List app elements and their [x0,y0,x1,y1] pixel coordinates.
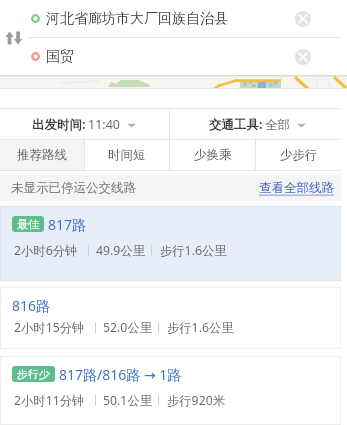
staticText: 少步行 [280,147,318,163]
staticText: 国贸 [46,48,295,66]
staticText: 最佳 [17,217,39,231]
button[interactable]: 步行少 [0,356,341,425]
staticText: 推荐路线 [17,147,67,163]
staticText: 未显示已停运公交线路 [11,180,136,196]
staticText: 2小时15分钟 [14,319,85,336]
button[interactable]: 推荐路线 [0,140,84,170]
staticText: 步行920米 [167,392,225,409]
staticText: 少换乘 [194,147,232,163]
staticText: 时间短 [108,147,146,163]
staticText: 步行1.6公里 [160,242,227,259]
button[interactable]: 最佳 [0,206,341,281]
staticText: 出发时间: [32,116,86,133]
staticText: 52.0公里 [103,319,152,336]
button[interactable]: 少换乘 [170,140,255,170]
staticText: 816路 [12,296,51,313]
staticText: 步行少 [17,367,50,381]
staticText: 50.1公里 [103,392,152,409]
button[interactable]: 出发时间: [0,109,169,139]
staticText: 11:40 [88,116,120,133]
staticText: 全部 [265,117,290,133]
button[interactable]: 时间短 [85,140,169,170]
button[interactable]: 国贸 [31,38,347,75]
staticText: 交通工具: [209,116,263,133]
button[interactable]: 少步行 [256,140,341,170]
button[interactable]: 交通工具: [170,109,341,139]
button[interactable]: 查看全部线路 [259,180,334,196]
button[interactable]: 816路 [0,287,341,349]
button[interactable]: Clear text [295,11,311,27]
button[interactable]: Clear text [295,49,311,65]
staticText: 河北省廊坊市大厂回族自治县 [46,10,295,28]
staticText: 49.9公里 [96,242,145,259]
staticText: 查看全部线路 [259,180,334,196]
button[interactable]: Swap start and destination [4,27,26,49]
staticText: 2小时6分钟 [14,242,78,259]
staticText: 817路/816路 → 1路 [59,365,182,382]
staticText: 2小时11分钟 [14,392,85,409]
staticText: 817路 [48,215,87,232]
staticText: 步行1.6公里 [167,319,234,336]
button[interactable]: 河北省廊坊市大厂回族自治县 [31,0,347,37]
